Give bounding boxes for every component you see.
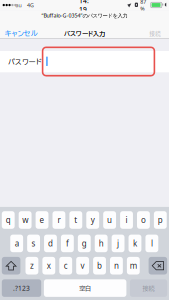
staticText: 87% [140,0,146,12]
button[interactable]: w [19,211,31,229]
button[interactable]: b [93,257,106,274]
button[interactable]: 空白 [44,279,126,297]
staticText: “Buffalo-G-0354”のパスワードを入力 [41,12,127,19]
staticText: t [74,215,77,225]
staticText: au [16,2,22,9]
button[interactable]: d [44,235,57,252]
button[interactable]: q [2,211,15,229]
staticText: x [47,260,51,271]
staticText: パスワード入力 [64,30,105,37]
staticText: v [81,260,85,271]
staticText: y [91,215,95,225]
button[interactable]: u [103,211,116,229]
button[interactable]: 接続 [141,27,161,40]
staticText: q [6,215,11,225]
button[interactable]: .?123 [2,279,41,297]
button[interactable]: k [128,235,141,252]
staticText: f [66,238,69,249]
staticText: b [97,260,102,271]
button[interactable]: i [120,211,133,229]
button[interactable]: l [145,235,158,252]
button[interactable]: s [27,235,40,252]
staticText: k [133,238,137,249]
button[interactable]: e [36,211,48,229]
button[interactable]: n [110,257,123,274]
button[interactable]: h [95,235,108,252]
staticText: 空白 [79,285,91,291]
staticText: j [117,238,119,249]
staticText: g [82,238,87,249]
staticText: p [158,215,163,225]
button[interactable]: y [86,211,99,229]
button[interactable]: t [69,211,82,229]
button[interactable]: v [76,257,89,274]
staticText: i [125,215,127,225]
staticText: z [30,260,34,271]
staticText: d [48,238,53,249]
staticText: .?123 [13,284,30,293]
button[interactable]: m [127,257,140,274]
button[interactable]: キャンセル [4,27,42,40]
staticText: r [57,215,60,225]
button[interactable]: Delete [149,257,167,274]
button[interactable]: z [25,257,38,274]
staticText: キャンセル [4,30,37,37]
staticText: 接続 [143,285,155,291]
button[interactable]: Shift [2,257,20,274]
button[interactable]: x [42,257,55,274]
staticText: e [39,215,44,225]
staticText: 接続 [149,31,161,36]
staticText: h [99,238,104,249]
button[interactable]: p [154,211,167,229]
staticText: パスワード [8,58,42,65]
button[interactable]: 接続 [130,279,167,297]
button[interactable]: o [137,211,150,229]
staticText: 14:19 [79,0,89,14]
button[interactable]: r [52,211,65,229]
staticText: u [107,215,112,225]
staticText: o [141,215,146,225]
button[interactable]: g [78,235,91,252]
staticText: l [151,238,153,249]
staticText: 4G [27,2,34,9]
button[interactable]: a [10,235,23,252]
staticText: s [32,238,36,249]
staticText: w [22,215,28,225]
staticText: c [64,260,68,271]
button[interactable]: c [59,257,72,274]
button[interactable]: j [112,235,124,252]
button[interactable]: f [61,235,74,252]
staticText: m [130,260,137,271]
staticText: n [114,260,119,271]
staticText: a [15,238,19,249]
